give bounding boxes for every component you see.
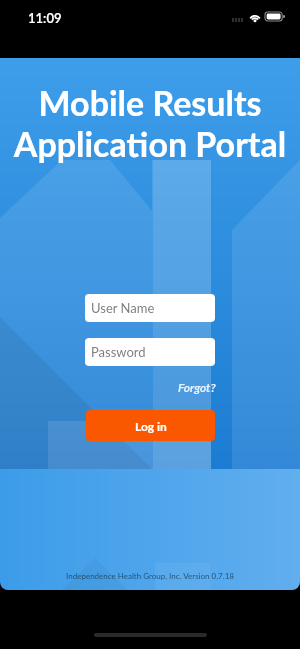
staticText: Application Portal [0,123,300,164]
staticText: Forgot? [178,380,216,394]
button[interactable]: Log in [86,410,215,441]
button[interactable]: Password [85,338,215,366]
staticText: Password [91,344,146,360]
staticText: Log in [135,419,167,433]
staticText: Mobile Results [0,82,300,123]
staticText: Independence Health Group, Inc. Version … [0,571,300,581]
staticText: 11:09 [28,10,62,26]
button[interactable]: User Name [85,294,215,322]
staticText: User Name [91,300,155,316]
button[interactable]: Forgot? [170,380,216,394]
